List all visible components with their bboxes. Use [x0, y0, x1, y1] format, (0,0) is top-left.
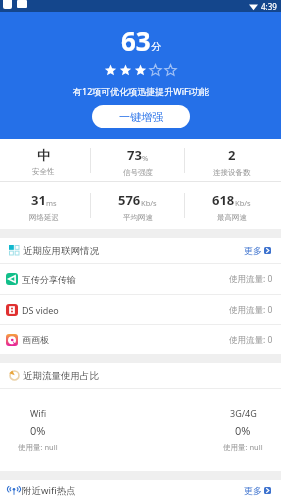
button[interactable]: DS video [6, 295, 273, 324]
staticText: Wifi [30, 407, 47, 419]
staticText: 618 [212, 191, 235, 209]
button[interactable]: 互传分享传输 [6, 264, 273, 294]
staticText: ms [46, 198, 57, 208]
staticText: 画画板 [22, 334, 49, 345]
staticText: 73 [127, 146, 142, 164]
staticText: 使用量: null [18, 442, 58, 452]
staticText: 3G/4G [230, 407, 257, 419]
staticText: 连接设备数 [213, 168, 251, 177]
staticText: 中 [37, 147, 50, 163]
staticText: Kb/s [235, 198, 251, 208]
staticText: 0% [235, 423, 251, 438]
staticText: 使用流量: 0 [229, 304, 273, 316]
staticText: 4:39 [261, 1, 277, 12]
staticText: DS video [22, 304, 59, 316]
staticText: 更多 [244, 485, 262, 496]
staticText: 网络延迟 [29, 213, 59, 222]
staticText: 使用流量: 0 [229, 273, 273, 285]
staticText: 互传分享传输 [22, 274, 76, 285]
staticText: 近期流量使用占比 [23, 370, 99, 382]
staticText: 有12项可优化项迅捷提升WiFi功能 [73, 85, 209, 97]
staticText: 最高网速 [217, 213, 247, 222]
staticText: 附近wifi热点 [22, 484, 76, 497]
staticText: 0% [30, 423, 46, 438]
staticText: 2 [228, 146, 236, 164]
button[interactable]: 一键增强 [92, 105, 190, 128]
staticText: Kb/s [141, 198, 157, 208]
button[interactable]: 更多 [244, 485, 271, 496]
staticText: 使用量: null [223, 442, 263, 452]
button[interactable]: 画画板 [6, 325, 273, 354]
button[interactable]: 更多 [244, 245, 271, 256]
staticText: 31 [31, 191, 46, 209]
staticText: 信号强度 [123, 168, 153, 177]
staticText: 近期应用联网情况 [23, 245, 99, 257]
staticText: 安全性 [32, 167, 55, 176]
staticText: 63 [121, 23, 151, 58]
staticText: % [142, 153, 149, 163]
staticText: 更多 [244, 245, 262, 256]
staticText: 一键增强 [119, 110, 163, 124]
staticText: 分 [151, 40, 161, 53]
staticText: 平均网速 [123, 213, 153, 222]
staticText: 使用流量: 0 [229, 334, 273, 346]
staticText: 576 [118, 191, 141, 209]
